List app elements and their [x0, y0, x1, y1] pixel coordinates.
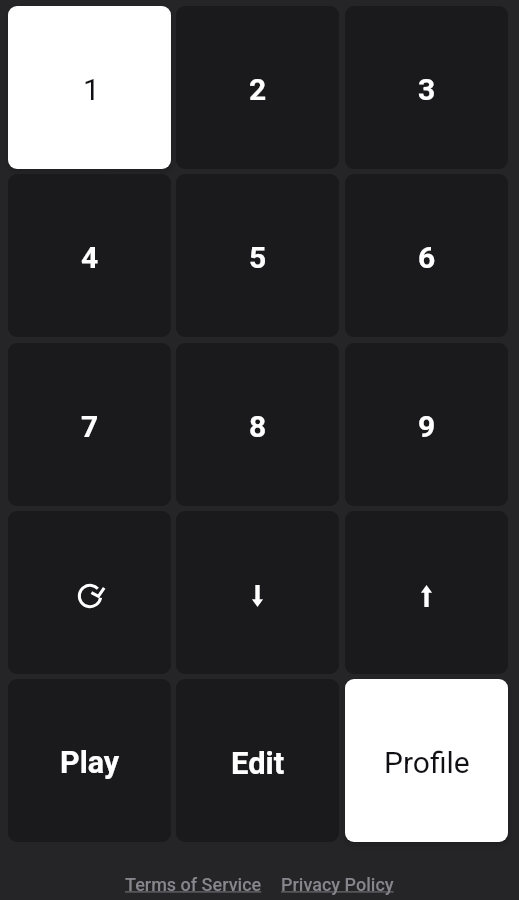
button[interactable]: Terms of Service — [125, 874, 262, 895]
staticText: Profile — [384, 745, 470, 780]
staticText: 7 — [81, 409, 99, 444]
staticText: 5 — [249, 240, 267, 275]
button[interactable]: 6 — [345, 174, 508, 337]
staticText: 8 — [249, 409, 267, 444]
button[interactable]: 4 — [8, 174, 171, 337]
staticText: 6 — [418, 240, 436, 275]
staticText: 2 — [249, 72, 267, 107]
button[interactable]: 2 — [176, 6, 339, 169]
staticText: 9 — [418, 409, 436, 444]
button[interactable]: 8 — [176, 343, 339, 506]
button[interactable]: Privacy Policy — [281, 874, 394, 895]
button[interactable]: 9 — [345, 343, 508, 506]
button[interactable]: Profile — [345, 679, 508, 842]
staticText: 4 — [81, 240, 99, 275]
staticText: Edit — [231, 745, 285, 781]
button[interactable]: 3 — [345, 6, 508, 169]
staticText: 3 — [418, 72, 436, 107]
button[interactable]: Move down — [176, 511, 339, 674]
staticText: Play — [60, 745, 120, 781]
button[interactable]: Refresh — [8, 511, 171, 674]
button[interactable]: Move up — [345, 511, 508, 674]
button[interactable]: Play — [8, 679, 171, 842]
staticText: 1 — [83, 72, 100, 107]
button[interactable]: Edit — [176, 679, 339, 842]
button[interactable]: 1 — [8, 6, 171, 169]
button[interactable]: 7 — [8, 343, 171, 506]
button[interactable]: 5 — [176, 174, 339, 337]
